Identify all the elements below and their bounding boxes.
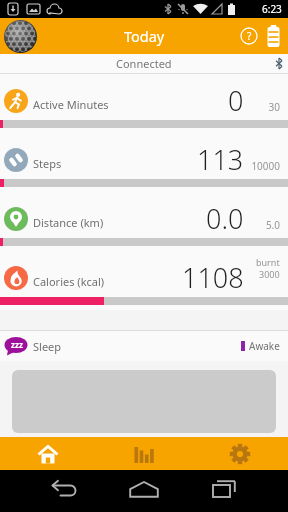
button[interactable] [192,437,288,470]
staticText: 10000 [248,159,280,173]
staticText: Distance (km) [33,215,104,230]
staticText: Calories (kcal) [33,274,105,289]
button[interactable]: Calories (kcal) [0,251,288,310]
staticText: 0.0 [206,200,244,237]
staticText: Sleep [33,339,62,354]
button[interactable]: ? [238,25,260,47]
staticText: burnt [256,256,280,268]
button[interactable]: Distance (km) [0,192,288,251]
button[interactable] [184,468,264,510]
button[interactable]: zzz [0,331,288,361]
staticText: Connected [116,56,172,71]
staticText: 1108 [182,259,244,296]
staticText: Steps [33,156,62,171]
staticText: 113 [197,141,244,178]
staticText: 5.0 [248,218,280,232]
staticText: 3000 [259,268,280,280]
staticText: Active Minutes [33,97,109,112]
staticText: ? [247,29,252,43]
button[interactable] [266,24,281,48]
staticText: Today [124,26,165,46]
button[interactable] [104,468,184,510]
staticText: Awake [249,339,280,353]
staticText: zzz [11,339,23,350]
button[interactable] [24,468,104,510]
staticText: 6:23 [262,2,282,16]
button[interactable] [96,437,192,470]
button[interactable]: Steps [0,133,288,192]
button[interactable] [0,437,96,470]
button[interactable]: Active Minutes [0,74,288,133]
staticText: 30 [248,100,280,114]
staticText: 0 [228,82,244,119]
